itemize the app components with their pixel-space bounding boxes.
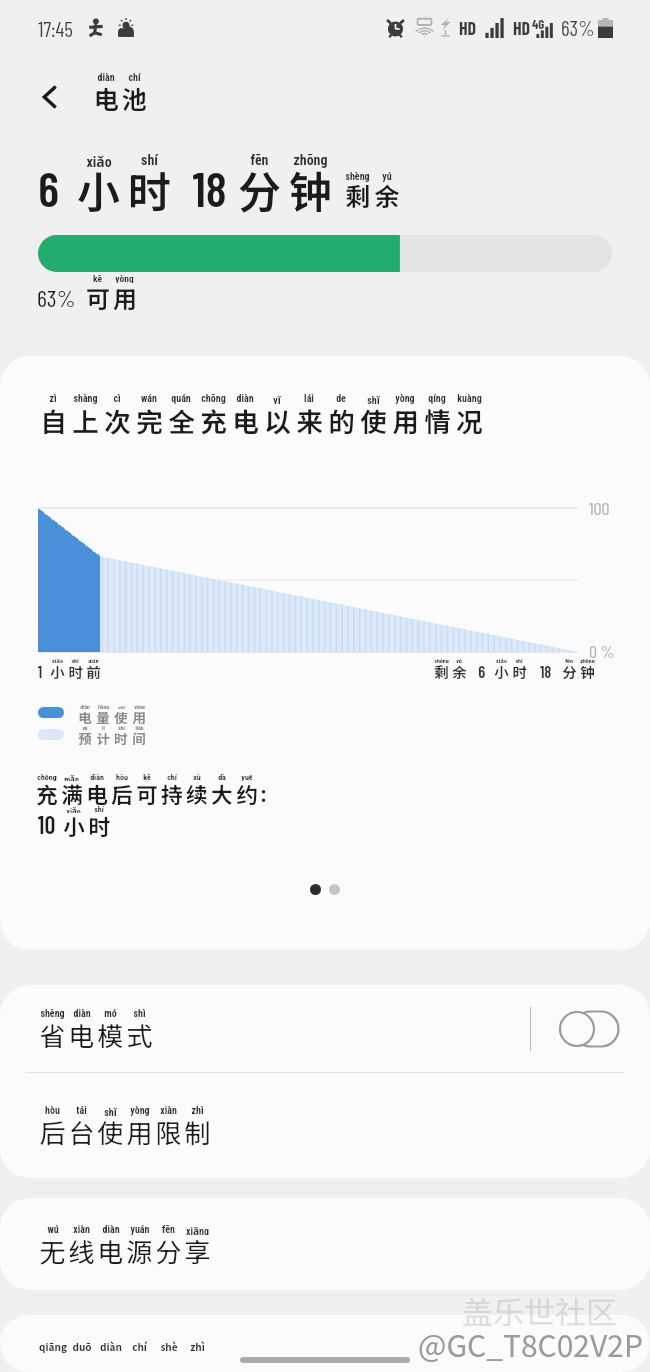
staticText: yòng: [395, 393, 415, 404]
staticText: 制: [184, 1113, 211, 1149]
staticText: xù: [193, 773, 201, 781]
staticText: 限: [155, 1113, 182, 1149]
staticText: 小: [50, 661, 65, 681]
staticText: 自: [40, 401, 67, 437]
staticText: 后: [39, 1113, 66, 1149]
button[interactable]: shěng: [0, 985, 650, 1072]
staticText: de: [336, 393, 346, 404]
staticText: @GC_T8C02V2P: [418, 1322, 643, 1365]
staticText: HD: [513, 17, 531, 39]
staticText: yòng: [134, 704, 145, 709]
staticText: quán: [171, 393, 191, 404]
staticText: xiǎo: [66, 805, 81, 813]
staticText: 小: [494, 661, 509, 681]
staticText: yuē: [241, 773, 253, 781]
staticText: zhì: [191, 1105, 204, 1116]
staticText: chí: [132, 1339, 147, 1353]
button[interactable]: wú: [0, 1198, 650, 1290]
staticText: zì: [49, 393, 57, 404]
staticText: shèng: [434, 657, 449, 663]
staticText: 模: [97, 1016, 124, 1052]
staticText: jiān: [135, 725, 144, 730]
staticText: 约: [236, 778, 258, 807]
staticText: 余: [452, 661, 467, 681]
staticText: 使: [360, 401, 387, 437]
staticText: yǐ: [273, 393, 281, 404]
staticText: xiǎo: [52, 657, 63, 663]
button[interactable]: Power saving mode toggle: [558, 1010, 620, 1048]
staticText: :: [260, 778, 267, 807]
staticText: 上: [72, 401, 99, 437]
staticText: 剩: [434, 661, 449, 681]
staticText: 大: [211, 778, 233, 807]
staticText: kě: [143, 773, 151, 781]
staticText: jì: [102, 725, 105, 730]
staticText: 剩: [345, 177, 371, 211]
staticText: 63%: [37, 283, 76, 312]
staticText: tái: [76, 1105, 87, 1116]
staticText: 省: [39, 1016, 66, 1052]
staticText: 用: [392, 401, 419, 437]
staticText: 时: [88, 810, 110, 839]
staticText: 使: [97, 1113, 124, 1149]
staticText: 前: [86, 661, 101, 681]
staticText: 钟: [289, 158, 332, 217]
staticText: shì: [133, 1008, 146, 1019]
staticText: 18: [535, 662, 553, 681]
staticText: wú: [47, 1224, 59, 1235]
staticText: diàn: [90, 773, 104, 781]
staticText: 0 %: [589, 640, 615, 662]
staticText: 全: [168, 401, 195, 437]
button[interactable]: qiāng: [0, 1315, 650, 1372]
staticText: 用: [126, 1113, 153, 1149]
staticText: 1: [36, 662, 44, 681]
staticText: 次: [104, 401, 131, 437]
staticText: 情: [424, 401, 451, 437]
staticText: 无: [39, 1232, 66, 1268]
staticText: 时: [128, 158, 171, 217]
staticText: 的: [328, 401, 355, 437]
staticText: duō: [72, 1339, 92, 1353]
staticText: 完: [136, 401, 163, 437]
staticText: 钟: [580, 661, 595, 681]
staticText: diàn: [236, 393, 254, 404]
staticText: zhì: [190, 1339, 205, 1353]
staticText: 用: [113, 280, 137, 313]
staticText: cì: [113, 393, 121, 404]
staticText: 计: [96, 728, 110, 746]
button[interactable]: hòu: [0, 1073, 650, 1178]
staticText: 用: [132, 707, 146, 725]
staticText: 电: [78, 707, 92, 725]
staticText: fēn: [565, 657, 573, 663]
staticText: shàng: [73, 393, 98, 404]
staticText: shěng: [40, 1008, 65, 1019]
staticText: 后: [111, 778, 133, 807]
staticText: 小: [63, 810, 85, 839]
staticText: 满: [61, 778, 83, 807]
staticText: diàn: [80, 704, 90, 709]
staticText: fēn: [250, 152, 269, 168]
staticText: 6: [473, 662, 487, 681]
staticText: xiǎng: [186, 1224, 209, 1235]
staticText: 电: [232, 401, 259, 437]
staticText: 电: [68, 1016, 95, 1052]
staticText: 18: [192, 159, 227, 217]
staticText: shǐ: [104, 1105, 117, 1116]
button[interactable]: Back: [27, 74, 73, 120]
staticText: 间: [132, 728, 146, 746]
staticText: xiàn: [73, 1224, 90, 1235]
staticText: qiāng: [39, 1339, 67, 1353]
staticText: diàn: [100, 1339, 122, 1353]
staticText: shí: [94, 805, 104, 813]
staticText: 余: [374, 177, 400, 211]
staticText: 17:45: [38, 16, 73, 41]
staticText: HD: [459, 17, 477, 39]
staticText: shè: [160, 1339, 178, 1353]
staticText: shèng: [345, 171, 370, 182]
staticText: xiǎo: [496, 657, 507, 663]
staticText: shí: [71, 657, 79, 663]
staticText: 享: [184, 1232, 211, 1268]
staticText: 预: [78, 728, 92, 746]
staticText: yuán: [130, 1224, 150, 1235]
staticText: chí: [128, 72, 141, 83]
